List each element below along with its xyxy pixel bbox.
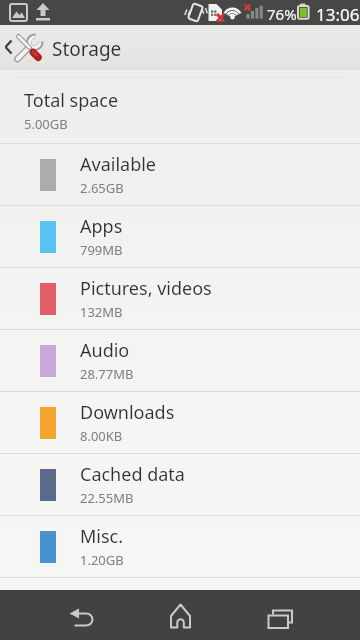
staticText: Total space	[24, 88, 119, 113]
staticText: 799MB	[80, 241, 123, 259]
staticText: 76%	[267, 4, 297, 24]
staticText: 2.65GB	[80, 179, 124, 197]
staticText: Apps	[80, 214, 123, 239]
button[interactable]: Cached data	[0, 453, 360, 515]
staticText: Available	[80, 152, 156, 177]
staticText: Storage	[52, 36, 122, 62]
button[interactable]	[120, 590, 240, 640]
button[interactable]: Pictures, videos	[0, 267, 360, 329]
button[interactable]: Apps	[0, 205, 360, 267]
button[interactable]: Available	[0, 143, 360, 205]
button[interactable]: Storage	[0, 25, 360, 70]
button[interactable]: Misc.	[0, 515, 360, 577]
staticText: Cached data	[80, 462, 185, 487]
staticText: Misc.	[80, 524, 124, 549]
staticText: Audio	[80, 338, 130, 363]
staticText: 132MB	[80, 303, 123, 321]
button[interactable]	[240, 590, 360, 640]
staticText: 5.00GB	[24, 115, 68, 133]
button[interactable]: Audio	[0, 329, 360, 391]
staticText: 22.55MB	[80, 489, 134, 507]
staticText: Downloads	[80, 400, 175, 425]
button[interactable]: Total space	[0, 70, 360, 143]
staticText: 1.20GB	[80, 551, 124, 569]
button[interactable]	[0, 590, 120, 640]
staticText: Pictures, videos	[80, 276, 212, 301]
staticText: 13:06	[316, 3, 360, 26]
staticText: 28.77MB	[80, 365, 134, 383]
staticText: 8.00KB	[80, 427, 123, 445]
button[interactable]: Downloads	[0, 391, 360, 453]
